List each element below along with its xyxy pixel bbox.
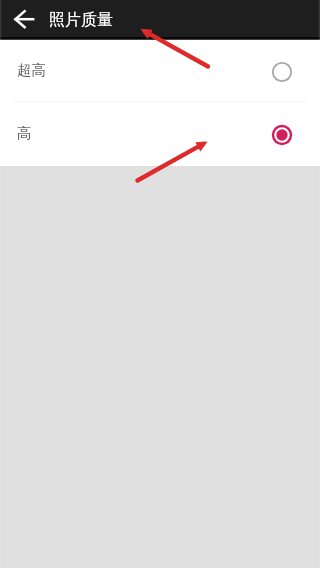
staticText: 高 — [17, 124, 32, 142]
button[interactable]: 超高 — [0, 40, 320, 103]
staticText: 超高 — [17, 61, 46, 79]
button[interactable]: Back — [0, 0, 48, 37]
staticText: 照片质量 — [49, 10, 113, 30]
button[interactable]: 高 — [0, 103, 320, 166]
